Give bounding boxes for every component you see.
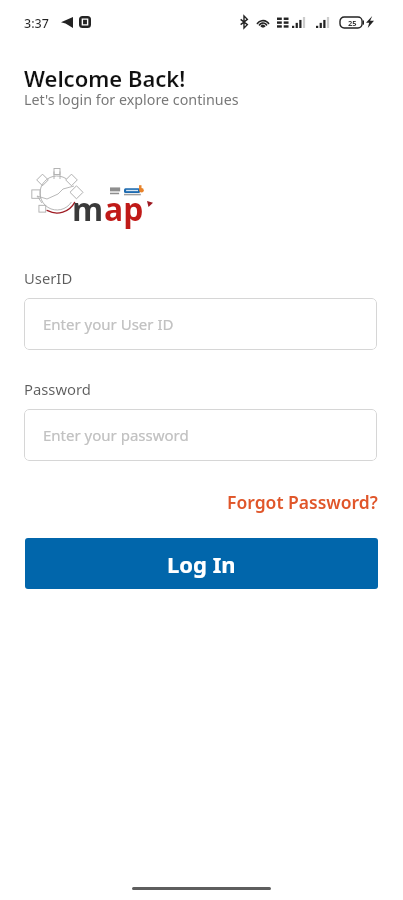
button[interactable]: Enter your password <box>24 409 377 461</box>
other: Charging <box>366 16 374 28</box>
staticText: Enter your password <box>43 425 189 445</box>
button[interactable]: Enter your User ID <box>24 298 377 350</box>
staticText: m <box>72 187 104 231</box>
button[interactable]: Log In <box>25 538 378 589</box>
other: Signal SIM 1 <box>292 17 306 28</box>
staticText: Forgot Password? <box>227 490 378 514</box>
staticText: Enter your User ID <box>43 314 174 334</box>
other: Bluetooth <box>240 16 248 28</box>
staticText: Log In <box>167 549 236 579</box>
staticText: Password <box>24 379 91 399</box>
other: Signal SIM 2 <box>316 17 330 28</box>
other: Wi-Fi <box>256 17 270 28</box>
staticText: 25 <box>348 18 357 28</box>
other: Location active <box>61 17 73 28</box>
staticText: 3:37 <box>24 15 49 32</box>
other: Notification <box>79 16 91 28</box>
staticText: Let's login for explore continues <box>24 90 239 109</box>
staticText: UserID <box>24 268 73 288</box>
button[interactable]: Forgot Password? <box>226 488 379 516</box>
other: Dual SIM <box>277 17 289 28</box>
staticText: Welcome Back! <box>24 63 186 93</box>
other: map logo <box>24 160 164 230</box>
staticText: ap <box>104 187 144 231</box>
